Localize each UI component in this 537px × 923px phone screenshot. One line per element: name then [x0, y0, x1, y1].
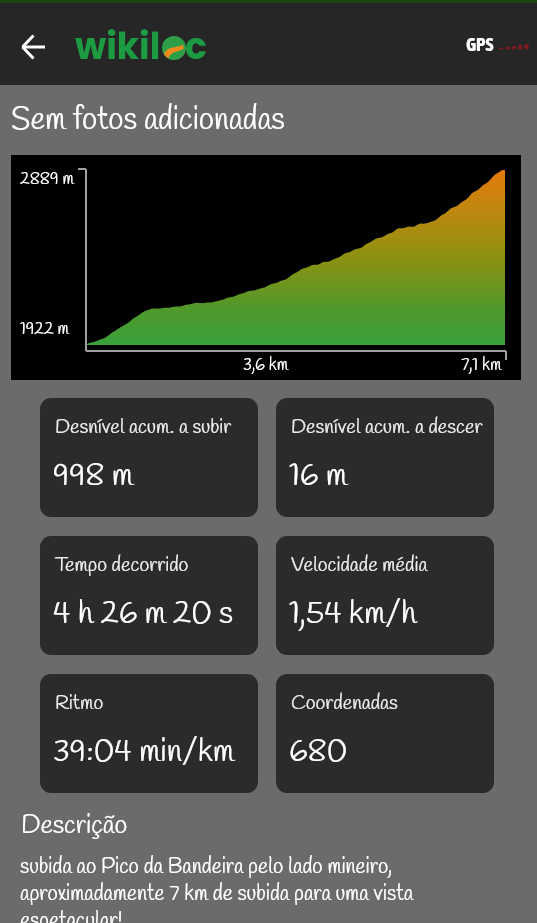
button[interactable]: Ritmo — [40, 674, 258, 793]
staticText: 3,6 km — [243, 354, 289, 377]
staticText: 16 m — [289, 455, 348, 498]
staticText: Ritmo — [55, 690, 104, 717]
button[interactable]: GPS signal — [466, 29, 531, 59]
staticText: wikil — [75, 21, 161, 71]
staticText: Velocidade média — [291, 552, 428, 579]
staticText: 7,1 km — [461, 354, 502, 377]
staticText: 4 h 26 m 20 s — [53, 593, 234, 636]
staticText: 39:04 min/km — [53, 731, 235, 774]
button[interactable]: Desnível acum. a subir — [40, 398, 258, 517]
staticText: Sem fotos adicionadas — [11, 100, 285, 141]
staticText: c — [185, 21, 207, 71]
staticText: Desnível acum. a subir — [55, 414, 232, 441]
button[interactable]: Desnível acum. a descer — [276, 398, 494, 517]
staticText: GPS — [466, 33, 494, 55]
button[interactable]: Back — [9, 23, 57, 71]
staticText: subida ao Pico da Bandeira pelo lado min… — [20, 853, 414, 923]
staticText: Desnível acum. a descer — [291, 414, 483, 441]
staticText: 2889 m — [20, 168, 74, 191]
staticText: Descrição — [21, 809, 128, 844]
button[interactable]: Coordenadas — [276, 674, 494, 793]
button[interactable]: Velocidade média — [276, 536, 494, 655]
staticText: Tempo decorrido — [55, 552, 189, 579]
staticText: 680 — [289, 731, 348, 774]
staticText: 998 m — [53, 455, 134, 498]
button[interactable]: Tempo decorrido — [40, 536, 258, 655]
staticText: Coordenadas — [291, 690, 398, 717]
staticText: 1,54 km/h — [289, 593, 417, 636]
staticText: 1922 m — [20, 318, 69, 341]
